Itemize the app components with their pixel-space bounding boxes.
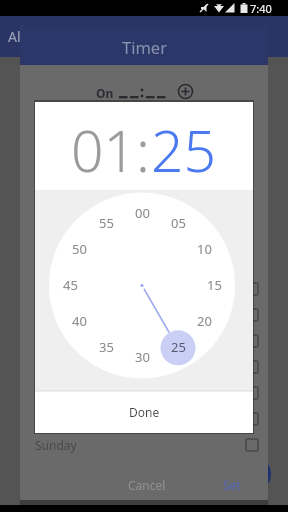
staticText: Monday [35,281,81,297]
staticText: Tuesday [35,307,82,323]
staticText: Alarms [8,27,54,45]
button[interactable]: Tuesday [20,302,268,328]
button[interactable]: Friday [20,380,268,406]
staticText: Friday [35,385,70,401]
button[interactable]: Monday [20,276,268,302]
staticText: 05 [171,214,186,232]
staticText: Sunday [35,437,77,453]
staticText: 00 [135,204,150,222]
staticText: 40 [72,312,87,330]
staticText: On [96,85,114,101]
staticText: 30 [135,348,150,366]
button[interactable]: Cancel [120,474,174,496]
button[interactable]: Wednesday [20,328,268,354]
button[interactable]: Done [35,391,253,433]
staticText: Done [129,404,160,420]
staticText: 20 [197,312,212,330]
staticText: 10 [197,240,212,258]
staticText: 25 [171,338,186,356]
staticText: 01: [71,111,151,187]
staticText: 55 [99,214,114,232]
staticText: Wednesday [35,333,101,349]
staticText: 50 [72,240,87,258]
staticText: 15 [207,276,222,294]
staticText: Timer [122,36,167,58]
staticText: Set [223,477,241,493]
staticText: 25 [151,111,217,187]
button[interactable] [233,455,271,493]
button[interactable] [90,78,200,104]
button[interactable]: Set [216,474,248,496]
staticText: Cancel [128,477,166,493]
staticText: 35 [99,338,114,356]
staticText: 7:40 [250,1,272,15]
staticText: 45 [63,276,78,294]
button[interactable]: Sunday [20,432,268,458]
button[interactable]: Thursday [20,354,268,380]
button[interactable]: Saturday [20,406,268,432]
